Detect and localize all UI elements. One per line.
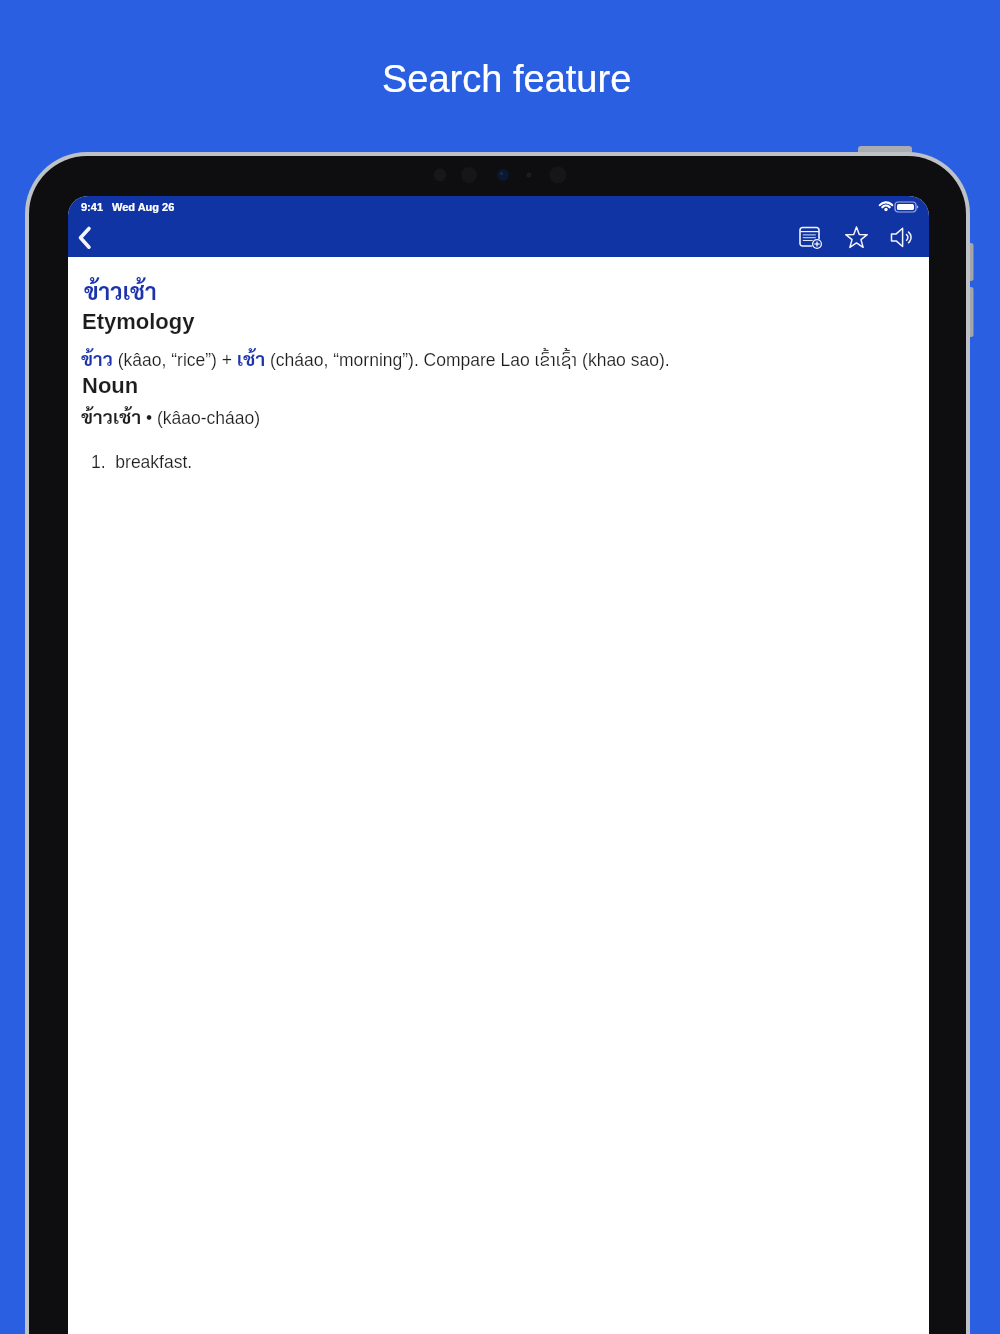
staticText: 1. breakfast. [91,452,193,472]
staticText: Etymology [82,309,195,334]
button[interactable] [838,218,876,254]
staticText: Search feature [382,58,632,100]
staticText: ข้าวเช้า • (kâao-cháao) [81,404,261,429]
button[interactable] [68,214,112,258]
staticText: ข้าว (kâao, “rice”) + เช้า (cháao, “morn… [81,345,670,374]
staticText: ข้าวเช้า [84,275,157,305]
staticText: Noun [82,373,139,398]
button[interactable] [883,218,921,254]
staticText: Wed Aug 26 [112,201,175,213]
button[interactable] [790,218,828,254]
staticText: 9:41 [81,201,104,213]
